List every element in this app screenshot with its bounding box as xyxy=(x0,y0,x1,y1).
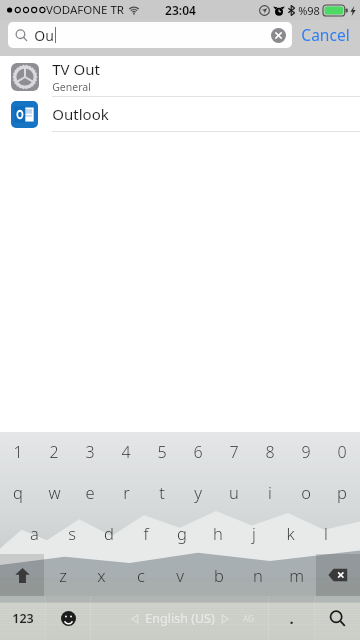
staticText: r xyxy=(123,481,130,503)
staticText: o xyxy=(301,481,311,503)
staticText: %98 xyxy=(298,3,320,18)
staticText: VODAFONE TR xyxy=(46,2,124,18)
button[interactable]: o xyxy=(288,472,324,512)
staticText: English (US) xyxy=(145,610,215,627)
button[interactable]: z xyxy=(44,554,82,596)
button[interactable]: j xyxy=(236,512,272,554)
staticText: z xyxy=(59,564,67,586)
staticText: AG xyxy=(243,613,254,624)
button[interactable]: 2 xyxy=(36,432,72,472)
staticText: w xyxy=(48,481,61,503)
button[interactable]: Outlook xyxy=(0,97,360,131)
staticText: n xyxy=(253,564,263,586)
staticText: s xyxy=(68,522,76,544)
staticText: 3 xyxy=(85,441,95,463)
staticText: Ou xyxy=(34,26,54,45)
button[interactable]: 123 xyxy=(0,596,45,640)
staticText: d xyxy=(104,522,114,544)
button[interactable]: x xyxy=(82,554,121,596)
staticText: c xyxy=(137,564,145,586)
staticText: 1 xyxy=(13,441,23,463)
staticText: 2 xyxy=(49,441,59,463)
staticText: x xyxy=(97,564,106,586)
button[interactable]: c xyxy=(121,554,160,596)
button[interactable]: Ou xyxy=(8,22,292,48)
button[interactable]: d xyxy=(90,512,127,554)
staticText: v xyxy=(176,564,184,586)
staticText: t xyxy=(159,481,165,503)
button[interactable]: . xyxy=(269,596,314,640)
staticText: h xyxy=(213,522,223,544)
button[interactable]: u xyxy=(216,472,252,512)
staticText: 23:04 xyxy=(165,2,196,18)
button[interactable]: 9 xyxy=(288,432,324,472)
button[interactable]: 6 xyxy=(180,432,216,472)
staticText: Outlook xyxy=(52,104,109,124)
button[interactable]: 0 xyxy=(324,432,360,472)
staticText: p xyxy=(337,481,347,503)
staticText: g xyxy=(177,522,187,544)
button[interactable]: 4 xyxy=(108,432,144,472)
button[interactable]: 8 xyxy=(252,432,288,472)
staticText: m xyxy=(289,564,304,586)
button[interactable]: e xyxy=(72,472,108,512)
button[interactable]: v xyxy=(160,554,199,596)
button[interactable]: 3 xyxy=(72,432,108,472)
staticText: q xyxy=(13,481,23,503)
staticText: . xyxy=(289,608,294,628)
staticText: l xyxy=(324,522,328,544)
button[interactable]: i xyxy=(252,472,288,512)
button[interactable]: 7 xyxy=(216,432,252,472)
staticText: i xyxy=(268,481,272,503)
staticText: 7 xyxy=(229,441,239,463)
button[interactable]: k xyxy=(272,512,308,554)
button[interactable]: l xyxy=(308,512,344,554)
button[interactable]: s xyxy=(53,512,90,554)
staticText: 8 xyxy=(265,441,275,463)
staticText: 9 xyxy=(301,441,311,463)
button[interactable]: Clear text xyxy=(271,28,286,43)
button[interactable]: Emoji xyxy=(46,596,90,640)
button[interactable]: Backspace xyxy=(316,554,360,596)
staticText: 6 xyxy=(193,441,203,463)
staticText: General xyxy=(52,80,91,94)
button[interactable]: g xyxy=(164,512,200,554)
staticText: b xyxy=(214,564,224,586)
staticText: Cancel xyxy=(301,24,350,45)
button[interactable]: n xyxy=(238,554,277,596)
staticText: 5 xyxy=(157,441,167,463)
button[interactable]: 1 xyxy=(0,432,36,472)
staticText: y xyxy=(194,481,202,503)
button[interactable]: b xyxy=(199,554,238,596)
button[interactable]: TV Out xyxy=(0,56,360,96)
staticText: j xyxy=(252,522,256,544)
button[interactable]: Search xyxy=(315,596,360,640)
button[interactable]: w xyxy=(36,472,72,512)
button[interactable]: 5 xyxy=(144,432,180,472)
button[interactable]: h xyxy=(200,512,236,554)
staticText: 4 xyxy=(121,441,131,463)
button[interactable]: Shift xyxy=(0,554,44,596)
button[interactable]: English (US) xyxy=(91,596,268,640)
button[interactable]: p xyxy=(324,472,360,512)
staticText: a xyxy=(30,522,39,544)
button[interactable]: a xyxy=(16,512,53,554)
staticText: u xyxy=(229,481,239,503)
button[interactable]: f xyxy=(127,512,164,554)
button[interactable]: r xyxy=(108,472,144,512)
staticText: 123 xyxy=(12,610,34,627)
staticText: TV Out xyxy=(52,59,100,79)
staticText: 0 xyxy=(337,441,347,463)
staticText: f xyxy=(143,522,149,544)
staticText: k xyxy=(286,522,295,544)
button[interactable]: m xyxy=(277,554,316,596)
button[interactable]: q xyxy=(0,472,36,512)
button[interactable]: Cancel xyxy=(292,20,352,49)
button[interactable]: y xyxy=(180,472,216,512)
staticText: e xyxy=(85,481,95,503)
button[interactable]: t xyxy=(144,472,180,512)
